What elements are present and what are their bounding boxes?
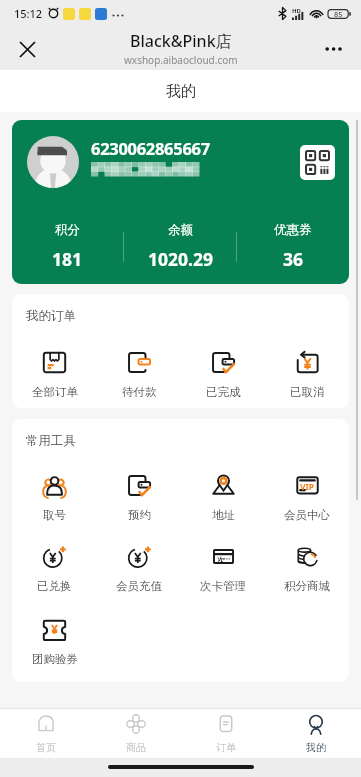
staticText: 我的 [166,82,196,101]
button[interactable]: 已取消 [265,351,349,399]
button[interactable]: 会员充值 [97,545,181,593]
staticText: 1020.29 [148,247,213,271]
staticText: VIP [300,481,315,493]
staticText: 余额 [168,222,193,238]
button[interactable]: 已兑换 [12,545,97,593]
staticText: 全部订单 [32,385,78,399]
staticText: 我的订单 [26,308,76,324]
staticText: 181 [52,247,83,271]
button[interactable]: VIP [265,474,349,522]
button[interactable]: 次 [181,545,265,593]
staticText: 预约 [128,508,151,522]
staticText: 积分商城 [284,579,330,593]
staticText: 已完成 [206,385,241,399]
staticText: wxshop.aibaocloud.com [124,53,238,67]
button[interactable]: 积分商城 [265,545,349,593]
staticText: 会员充值 [116,579,162,593]
button[interactable]: 优惠券 [237,222,349,271]
staticText: 待付款 [122,385,157,399]
staticText: 15:12 [14,6,43,21]
staticText: 团购验券 [32,652,78,666]
staticText: 首页 [36,741,56,754]
button[interactable]: More options [319,34,349,64]
staticText: 已兑换 [37,579,72,593]
staticText: 积分 [55,222,80,238]
button[interactable]: 全部订单 [12,351,97,399]
button[interactable]: 我的 [271,709,361,758]
staticText: 已取消 [290,385,325,399]
button[interactable]: 商品 [91,709,181,758]
button[interactable]: 积分 [12,222,123,271]
button[interactable]: 地址 [181,474,265,522]
button[interactable]: 团购验券 [12,618,97,666]
staticText: 订单 [216,741,236,754]
button[interactable]: 订单 [181,709,271,758]
button[interactable]: Close [12,34,42,64]
button[interactable]: 已完成 [181,351,265,399]
button[interactable]: 首页 [0,709,91,758]
staticText: 优惠券 [274,222,312,238]
staticText: HD [292,7,301,15]
staticText: 85 [334,9,343,19]
staticText: Black&Pink店 [130,30,232,52]
staticText: 地址 [212,508,235,522]
staticText: 6230062865667 [91,137,210,159]
button[interactable]: 预约 [97,474,181,522]
button[interactable]: 6230062865667 [12,120,349,284]
staticText: 常用工具 [26,433,76,449]
staticText: 次卡管理 [200,579,246,593]
button[interactable]: 待付款 [97,351,181,399]
button[interactable]: 余额 [124,222,236,271]
staticText: 会员中心 [284,508,330,522]
button[interactable]: 取号 [12,474,97,522]
staticText: 取号 [43,508,66,522]
staticText: 商品 [126,741,146,754]
button[interactable]: QR code [300,145,335,180]
staticText: 我的 [306,741,326,754]
staticText: 36 [283,247,304,271]
staticText: 次 [217,556,225,565]
